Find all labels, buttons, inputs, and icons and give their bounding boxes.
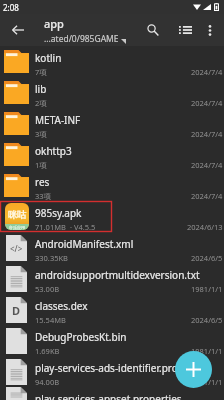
staticText: androidsupportmultidexversion.txt [35,268,200,282]
staticText: 71.01MB [35,222,66,232]
staticText: ...ated/0/985GAME [44,33,119,45]
staticText: META-INF [35,113,81,127]
staticText: 2024/7/4 [191,129,223,139]
staticText: AndroidManifest.xml [35,237,134,251]
button[interactable]: META-INF [0,108,224,139]
staticText: 7项 [35,67,47,77]
button[interactable]: </> [0,232,224,263]
staticText: 330.35KB [35,253,68,263]
staticText: 2024/7/4 [191,67,223,77]
staticText: 2024/6/13 [187,222,223,232]
staticText: lib [35,82,47,96]
staticText: 1981/1/1 [191,346,223,356]
staticText: okhttp3 [35,144,72,158]
staticText: 33项 [35,191,52,201]
staticText: play-services-appset.properties [35,392,182,400]
staticText: 1.69KB [35,346,60,356]
staticText: 1981/1/1 [191,377,223,387]
button[interactable]: D [0,294,224,325]
staticText: res [35,175,50,189]
staticText: 2024/7/4 [191,98,223,108]
staticText: 咪咕 [8,209,26,220]
button[interactable]: res [0,170,224,201]
button[interactable]: More options [197,17,223,43]
staticText: 2024/7/4 [191,191,223,201]
button[interactable]: View mode [172,17,198,43]
staticText: 2项 [35,98,47,108]
button[interactable]: kotlin [0,46,224,77]
button[interactable]: Add [175,351,212,388]
button[interactable]: androidsupportmultidexversion.txt [0,263,224,294]
button[interactable]: okhttp3 [0,139,224,170]
staticText: 2024/6/5 [191,315,223,325]
button[interactable]: lib [0,77,224,108]
staticText: 1981/1/1 [191,284,223,294]
staticText: 985sy.apk [35,206,82,220]
button[interactable]: play-services-appset.properties [0,387,224,400]
staticText: DebugProbesKt.bin [35,330,127,344]
staticText: 94.00B [35,377,60,387]
button[interactable]: Back [5,17,31,43]
staticText: app [44,16,64,31]
staticText: play-services-ads-identifier.properties [35,361,211,375]
button[interactable]: play-services-ads-identifier.properties [0,356,224,387]
button[interactable]: DebugProbesKt.bin [0,325,224,356]
staticText: 53.00B [35,284,60,294]
staticText: kotlin [35,51,62,65]
staticText: </> [10,243,23,254]
staticText: 1项 [35,160,47,170]
staticText: classes.dex [35,299,88,313]
button[interactable]: Search [140,17,166,43]
staticText: · V4.5.5 [70,222,96,232]
staticText: 音乐应用 [9,225,25,230]
staticText: 15.54MB [35,315,66,325]
staticText: D [12,303,21,318]
staticText: 2:08 [3,2,19,13]
staticText: 2024/7/4 [191,160,223,170]
staticText: 2024/6/5 [191,253,223,263]
button[interactable]: 咪咕 [0,201,224,232]
staticText: 3项 [35,129,47,139]
